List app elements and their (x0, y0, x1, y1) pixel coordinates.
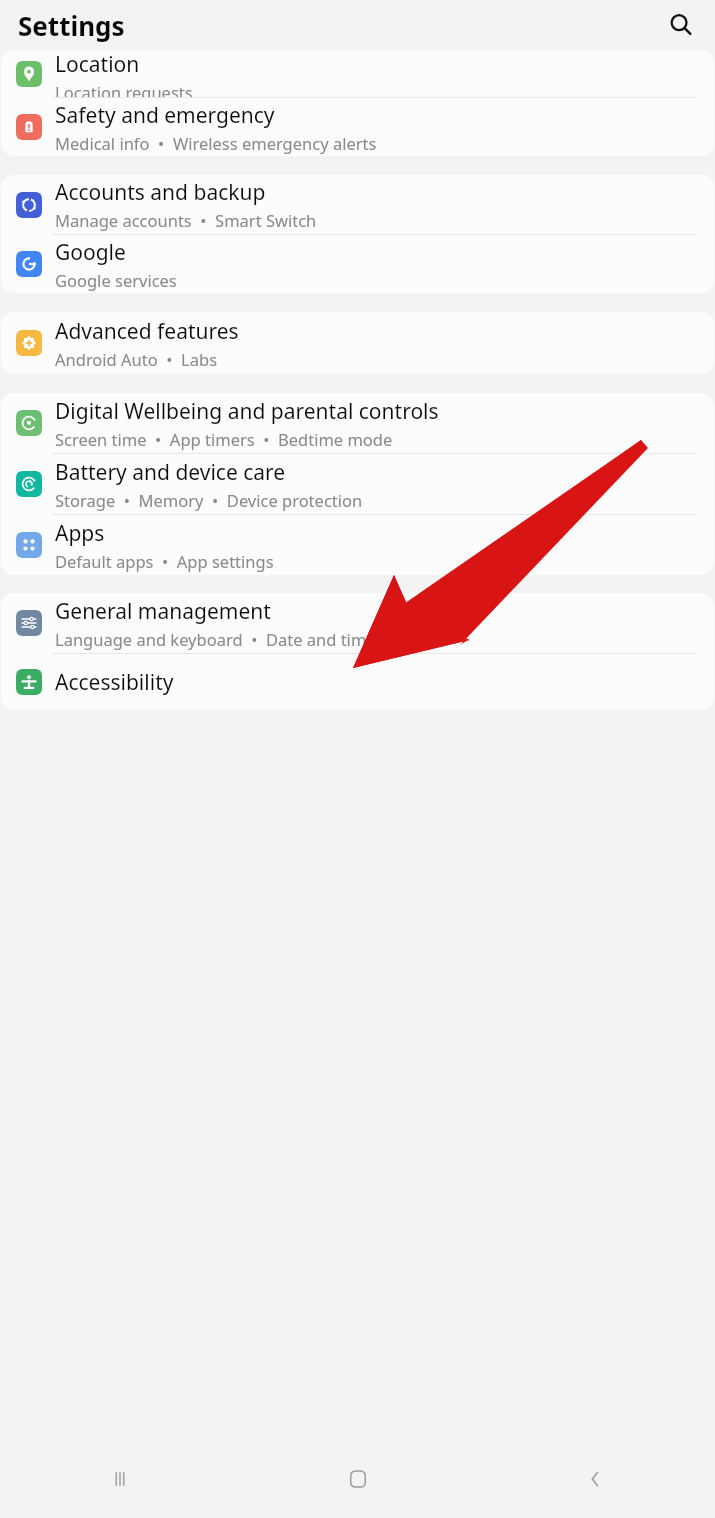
staticText: General management (55, 597, 271, 626)
staticText: Screen time • App timers • Bedtime mode (55, 428, 393, 450)
staticText: Google services (55, 269, 177, 291)
button[interactable]: Search (659, 3, 703, 47)
staticText: Default apps • App settings (55, 550, 274, 572)
staticText: Android Auto • Labs (55, 348, 218, 370)
button[interactable]: Apps (1, 515, 714, 575)
staticText: Battery and device care (55, 458, 286, 487)
staticText: Apps (55, 519, 105, 548)
staticText: Settings (18, 8, 125, 43)
staticText: Digital Wellbeing and parental controls (55, 397, 439, 426)
staticText: Accessibility (55, 668, 174, 697)
staticText: Safety and emergency (55, 101, 275, 130)
staticText: Advanced features (55, 317, 239, 346)
button[interactable]: Advanced features (1, 312, 714, 374)
button[interactable]: Home (239, 1440, 477, 1518)
button[interactable]: Safety and emergency (1, 98, 714, 156)
staticText: Storage • Memory • Device protection (55, 489, 363, 511)
staticText: Accounts and backup (55, 178, 266, 207)
button[interactable]: Accessibility (1, 654, 714, 710)
button[interactable]: Battery and device care (1, 454, 714, 514)
staticText: Language and keyboard • Date and time (55, 628, 376, 650)
button[interactable]: Back (477, 1440, 715, 1518)
staticText: Location requests (55, 81, 193, 97)
button[interactable]: Google (1, 235, 714, 293)
staticText: Medical info • Wireless emergency alerts (55, 132, 377, 154)
button[interactable]: Location (1, 50, 714, 97)
button[interactable]: Accounts and backup (1, 175, 714, 234)
staticText: Google (55, 238, 126, 267)
staticText: Manage accounts • Smart Switch (55, 209, 317, 231)
staticText: Location (55, 50, 140, 79)
button[interactable]: General management (1, 593, 714, 653)
button[interactable]: Digital Wellbeing and parental controls (1, 393, 714, 453)
button[interactable]: Recent apps (0, 1440, 239, 1518)
